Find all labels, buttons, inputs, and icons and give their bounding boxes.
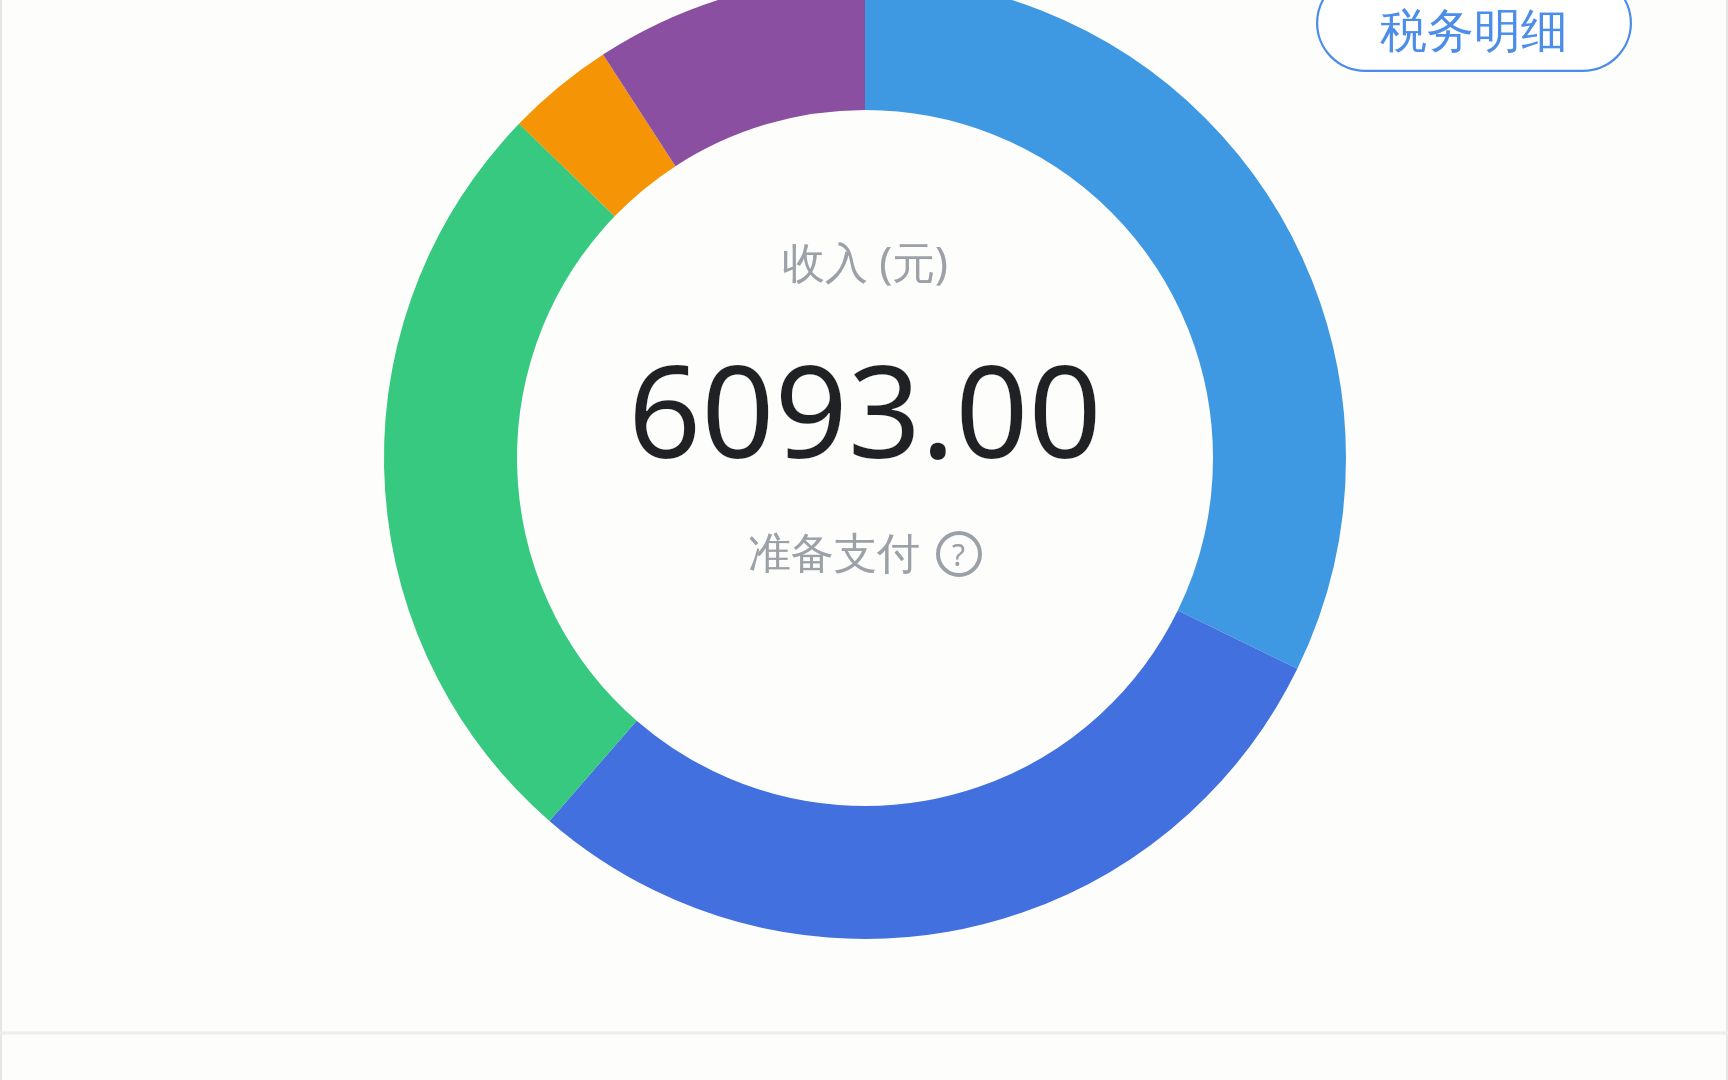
- other: 帮助说明: [936, 531, 982, 577]
- button[interactable]: 税务明细: [1316, 0, 1632, 72]
- staticText: ?: [952, 534, 966, 575]
- button[interactable]: 准备支付: [742, 521, 988, 587]
- staticText: 6093.00: [628, 321, 1102, 495]
- staticText: 收入 (元): [782, 232, 948, 291]
- staticText: 税务明细: [1380, 2, 1568, 61]
- staticText: 准备支付: [748, 527, 920, 581]
